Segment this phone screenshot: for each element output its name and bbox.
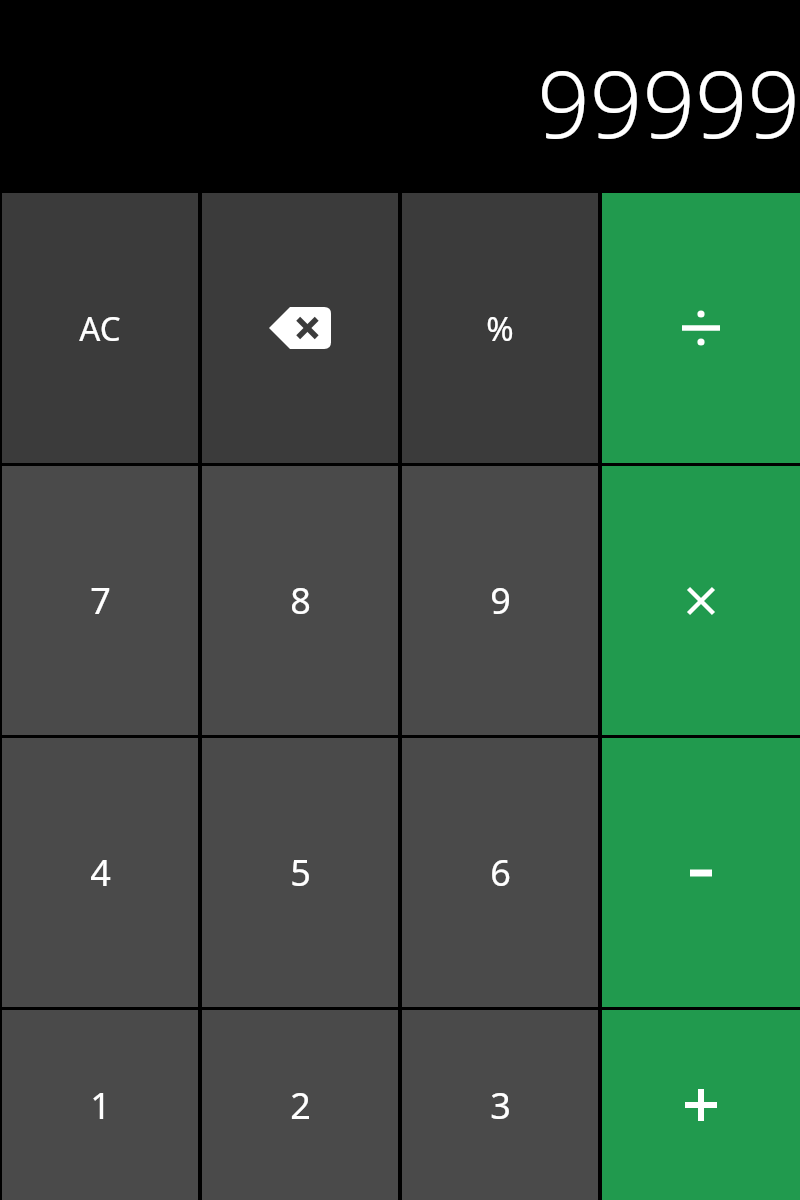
- button[interactable]: Backspace: [202, 193, 398, 463]
- button[interactable]: Minus: [602, 738, 800, 1007]
- staticText: 2: [290, 1081, 311, 1130]
- button[interactable]: 3: [402, 1010, 598, 1200]
- staticText: 5: [290, 848, 311, 897]
- staticText: 4: [90, 848, 111, 897]
- staticText: 8: [290, 576, 311, 625]
- button[interactable]: 7: [2, 466, 198, 735]
- button[interactable]: %: [402, 193, 598, 463]
- staticText: AC: [79, 306, 121, 351]
- button[interactable]: 1: [2, 1010, 198, 1200]
- button[interactable]: 2: [202, 1010, 398, 1200]
- staticText: 1: [90, 1081, 111, 1130]
- button[interactable]: 9: [402, 466, 598, 735]
- button[interactable]: 6: [402, 738, 598, 1007]
- button[interactable]: 5: [202, 738, 398, 1007]
- staticText: 7: [90, 576, 111, 625]
- button[interactable]: 8: [202, 466, 398, 735]
- button[interactable]: Divide: [602, 193, 800, 463]
- button[interactable]: Plus: [602, 1010, 800, 1200]
- staticText: 6: [490, 848, 511, 897]
- button[interactable]: 4: [2, 738, 198, 1007]
- staticText: %: [486, 306, 514, 351]
- staticText: 99999: [537, 40, 800, 165]
- staticText: 9: [490, 576, 511, 625]
- button[interactable]: Multiply: [602, 466, 800, 735]
- button[interactable]: AC: [2, 193, 198, 463]
- staticText: 3: [490, 1081, 511, 1130]
